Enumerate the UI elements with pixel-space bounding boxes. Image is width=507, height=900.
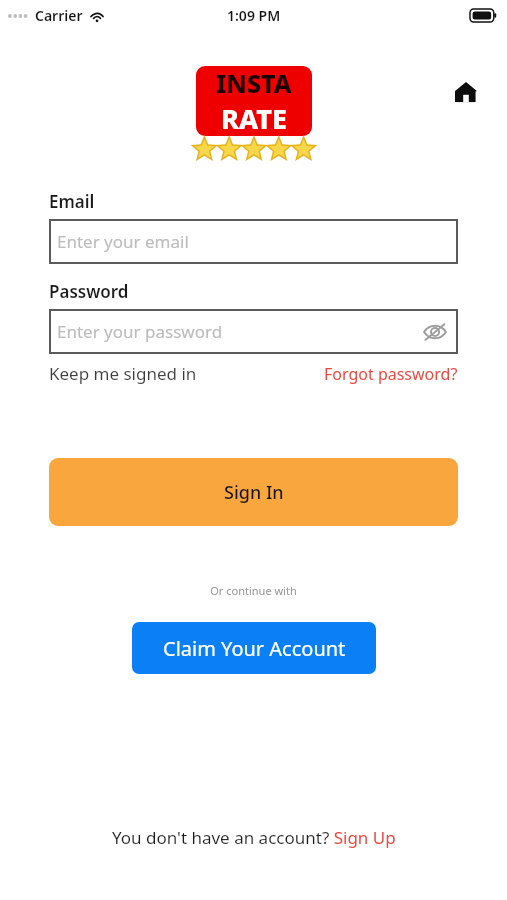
staticText: 1:09 PM xyxy=(227,6,281,25)
staticText: Email xyxy=(49,190,95,213)
button[interactable]: Enter your password xyxy=(49,309,458,354)
button[interactable]: Enter your email xyxy=(49,219,458,264)
staticText: RATE xyxy=(221,100,287,136)
button[interactable]: You don't have an account? Sign Up xyxy=(112,826,396,849)
staticText: Enter your email xyxy=(57,230,189,253)
staticText: INSTA xyxy=(216,66,292,100)
staticText: Or continue with xyxy=(49,583,458,598)
button[interactable]: Claim Your Account xyxy=(132,622,376,674)
button[interactable]: Show password xyxy=(418,315,452,349)
staticText: Sign In xyxy=(224,480,284,505)
staticText: Forgot password? xyxy=(324,363,458,385)
staticText: Claim Your Account xyxy=(163,635,346,662)
button[interactable]: Sign In xyxy=(49,458,458,526)
staticText: Carrier xyxy=(35,6,83,25)
staticText: Enter your password xyxy=(57,320,223,343)
staticText: You don't have an account? Sign Up xyxy=(112,826,396,849)
button[interactable]: Keep me signed in xyxy=(49,362,197,385)
button[interactable]: Home xyxy=(444,70,488,114)
staticText: Keep me signed in xyxy=(49,362,197,385)
staticText: Password xyxy=(49,280,129,303)
button[interactable]: Forgot password? xyxy=(324,363,458,385)
